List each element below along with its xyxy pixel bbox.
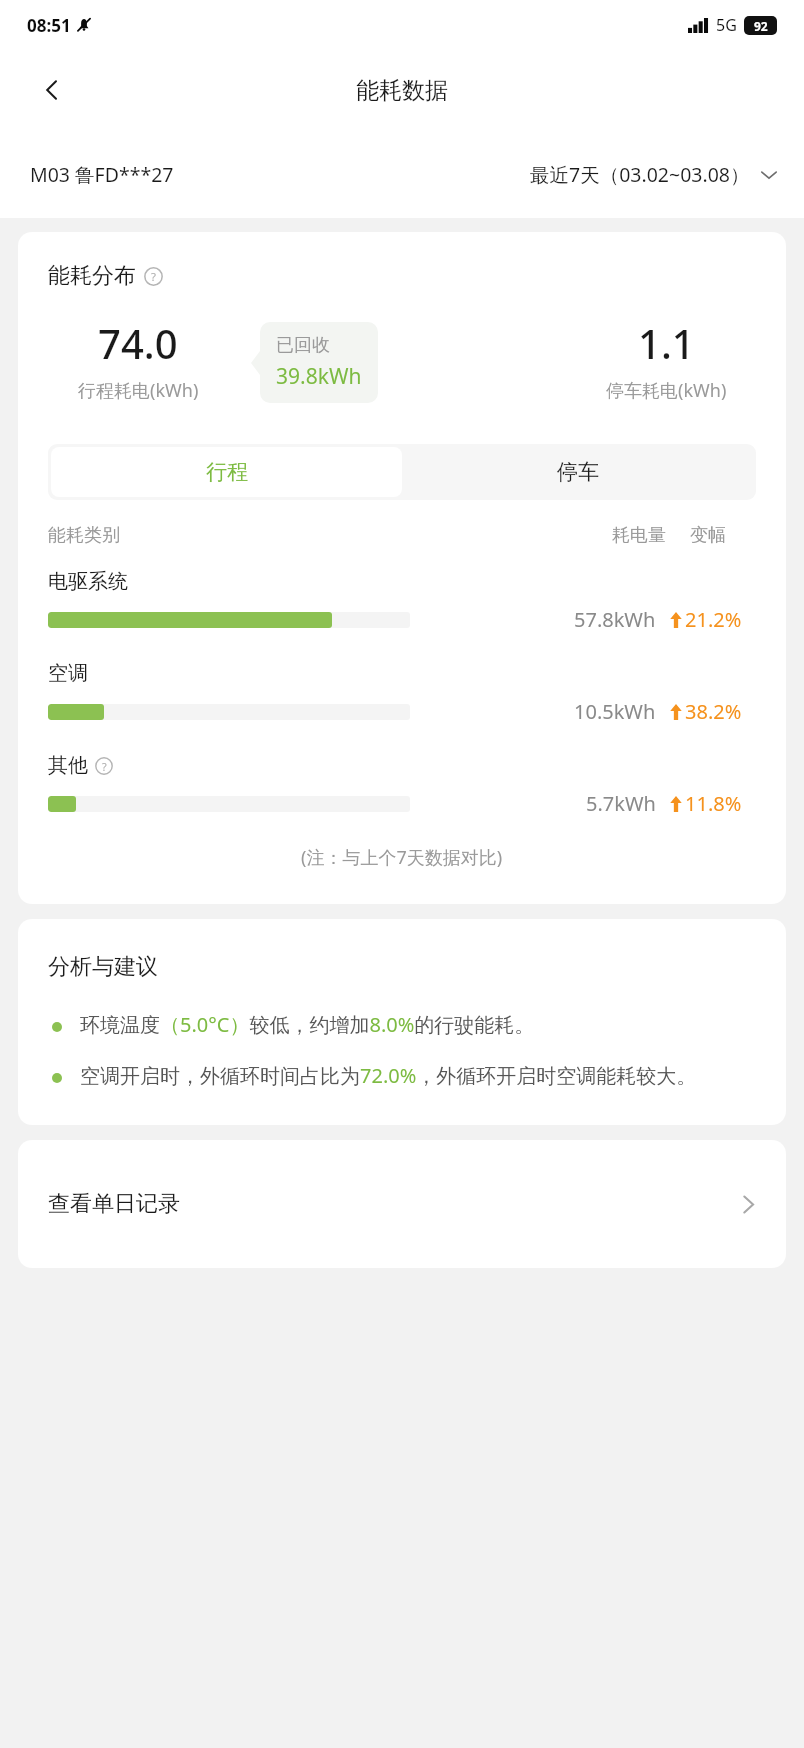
- staticText: 空调开启时，外循环时间占比为72.0%，外循环开启时空调能耗较大。: [80, 1062, 697, 1089]
- staticText: 其他: [48, 753, 88, 778]
- staticText: 能耗分布: [48, 262, 136, 290]
- staticText: 11.8%: [685, 790, 742, 817]
- staticText: 5.7kWh: [586, 790, 656, 817]
- staticText: 空调: [48, 661, 88, 686]
- button[interactable]: Back: [28, 66, 76, 114]
- staticText: 38.2%: [685, 698, 742, 725]
- staticText: 耗电量: [612, 524, 666, 547]
- staticText: M03 鲁FD***27: [30, 161, 174, 188]
- staticText: ?: [102, 759, 107, 774]
- button[interactable]: 查看单日记录: [18, 1140, 786, 1268]
- staticText: 行程: [206, 459, 248, 485]
- staticText: 查看单日记录: [48, 1190, 180, 1218]
- staticText: 1.1: [638, 316, 695, 370]
- button[interactable]: 停车: [402, 447, 753, 497]
- button[interactable]: Help: [144, 267, 163, 286]
- button[interactable]: 行程: [51, 447, 402, 497]
- staticText: 5G: [716, 14, 737, 36]
- staticText: 能耗类别: [48, 524, 120, 547]
- staticText: 电驱系统: [48, 569, 128, 594]
- staticText: 21.2%: [685, 606, 742, 633]
- staticText: 已回收: [276, 334, 330, 357]
- staticText: 停车: [557, 459, 599, 485]
- staticText: 环境温度（5.0°C）较低，约增加8.0%的行驶能耗。: [80, 1011, 535, 1038]
- staticText: 能耗数据: [356, 76, 448, 105]
- staticText: 最近7天（03.02~03.08）: [530, 161, 750, 188]
- staticText: 分析与建议: [48, 953, 158, 981]
- staticText: 08:51: [27, 14, 71, 37]
- staticText: 10.5kWh: [574, 698, 656, 725]
- staticText: 停车耗电(kWh): [606, 378, 727, 403]
- staticText: ?: [151, 269, 156, 285]
- staticText: 39.8kWh: [276, 362, 362, 391]
- staticText: (注：与上个7天数据对比): [301, 845, 503, 870]
- staticText: 92: [754, 18, 768, 34]
- staticText: 行程耗电(kWh): [78, 378, 199, 403]
- staticText: 74.0: [98, 316, 178, 370]
- staticText: 变幅: [690, 524, 726, 547]
- staticText: 57.8kWh: [574, 606, 656, 633]
- button[interactable]: Help: [95, 757, 113, 775]
- button[interactable]: 最近7天（03.02~03.08）: [530, 161, 778, 188]
